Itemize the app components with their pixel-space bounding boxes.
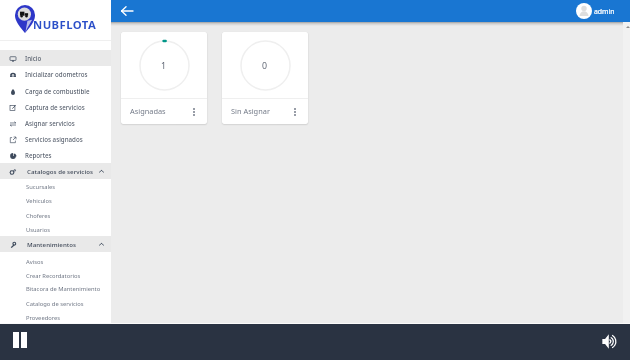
staticText: 1 <box>161 60 167 72</box>
staticText: Avisos <box>26 258 44 266</box>
staticText: Crear Recordatorios <box>26 272 81 280</box>
button[interactable]: Mantenimientos <box>0 236 111 252</box>
staticText: 0 <box>262 60 268 72</box>
button[interactable]: Carga de combustible <box>0 83 111 99</box>
button[interactable]: Captura de servicios <box>0 99 111 115</box>
button[interactable]: Avisos <box>0 255 111 269</box>
button[interactable]: Vehiculos <box>0 194 111 208</box>
button[interactable]: 1 <box>121 32 207 124</box>
button[interactable]: Servicios asignados <box>0 131 111 147</box>
staticText: Captura de servicios <box>25 103 85 111</box>
button[interactable]: Sucursales <box>0 180 111 194</box>
staticText: Inicializar odometros <box>25 70 88 78</box>
staticText: Servicios asignados <box>25 135 83 143</box>
button[interactable]: Crear Recordatorios <box>0 269 111 283</box>
button[interactable]: Catalogo de servicios <box>0 297 111 311</box>
staticText: Choferes <box>26 212 51 220</box>
staticText: Inicio <box>25 54 42 62</box>
staticText: NUBFLOTA <box>33 17 97 32</box>
staticText: Asignar servicios <box>25 119 75 127</box>
staticText: Proveedores <box>26 314 61 322</box>
button[interactable]: Usuarios <box>0 223 111 237</box>
button[interactable]: Bitacora de Mantenimiento <box>0 282 111 296</box>
button[interactable]: Catalogos de servicios <box>0 163 111 179</box>
button[interactable]: Reportes <box>0 147 111 163</box>
staticText: Catalogo de servicios <box>26 300 84 308</box>
staticText: Carga de combustible <box>25 87 90 95</box>
staticText: admin <box>594 7 615 16</box>
button[interactable]: Proveedores <box>0 311 111 325</box>
staticText: Asignadas <box>130 106 166 116</box>
staticText: Reportes <box>25 151 52 159</box>
staticText: Catalogos de servicios <box>27 167 93 175</box>
staticText: Sucursales <box>26 183 56 191</box>
staticText: Mantenimientos <box>27 240 77 248</box>
button[interactable]: Choferes <box>0 209 111 223</box>
staticText: Usuarios <box>26 226 51 234</box>
button[interactable]: More options <box>288 105 302 119</box>
staticText: Sin Asignar <box>231 106 270 116</box>
button[interactable]: Inicio <box>0 50 111 66</box>
staticText: Bitacora de Mantenimiento <box>26 285 101 293</box>
button[interactable]: Pause <box>0 324 40 360</box>
staticText: Vehiculos <box>26 197 52 205</box>
button[interactable]: More options <box>187 105 201 119</box>
button[interactable]: Asignar servicios <box>0 115 111 131</box>
button[interactable]: Volume <box>588 324 628 360</box>
button[interactable]: Inicializar odometros <box>0 66 111 82</box>
button[interactable]: 0 <box>222 32 308 124</box>
button[interactable]: admin <box>572 3 619 19</box>
button[interactable]: Back <box>116 0 138 22</box>
